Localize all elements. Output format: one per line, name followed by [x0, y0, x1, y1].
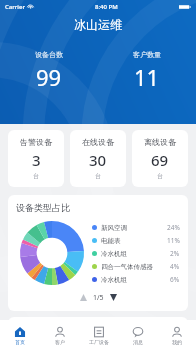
- staticText: 告警设备: [20, 137, 52, 147]
- button[interactable]: 冷水机组: [92, 273, 180, 286]
- staticText: 1/5: [93, 293, 104, 303]
- staticText: 四合一气体传感器: [101, 263, 153, 271]
- staticText: 消息: [133, 339, 143, 345]
- button[interactable]: Next page: [107, 291, 120, 304]
- staticText: 电能表: [101, 237, 121, 245]
- staticText: 新风空调: [101, 224, 127, 232]
- button[interactable]: 新风空调: [92, 221, 180, 234]
- staticText: 4%: [170, 262, 180, 271]
- staticText: 设备类型占比: [16, 202, 70, 213]
- staticText: 离线设备: [144, 137, 176, 147]
- button[interactable]: 首页: [0, 320, 40, 350]
- button[interactable]: 消息: [118, 320, 157, 350]
- staticText: Carrier: [5, 3, 25, 11]
- button[interactable]: 我的: [157, 320, 196, 350]
- button[interactable]: 冷水机组: [92, 247, 180, 260]
- staticText: 冰山运维: [0, 17, 196, 32]
- staticText: 台: [95, 172, 101, 180]
- staticText: 3: [32, 150, 41, 170]
- button[interactable]: 客户: [40, 320, 79, 350]
- button[interactable]: 在线设备: [70, 130, 126, 187]
- staticText: 冷水机组: [101, 250, 127, 258]
- button[interactable]: 四合一气体传感器: [92, 260, 180, 273]
- staticText: 11: [134, 62, 160, 92]
- staticText: 6%: [170, 275, 180, 284]
- button[interactable]: 设备台数: [0, 50, 98, 92]
- button[interactable]: 工厂设备: [79, 320, 118, 350]
- staticText: 在线设备: [82, 137, 114, 147]
- staticText: 首页: [15, 339, 25, 345]
- staticText: 设备台数: [35, 50, 63, 59]
- button[interactable]: 告警设备: [8, 130, 64, 187]
- staticText: 11%: [167, 236, 180, 245]
- staticText: 8:40 PM: [95, 3, 118, 11]
- staticText: 99: [36, 62, 62, 92]
- staticText: 台: [33, 172, 39, 180]
- staticText: 工厂设备: [89, 339, 109, 345]
- staticText: 客户数量: [133, 50, 161, 59]
- staticText: 我的: [172, 339, 182, 345]
- staticText: 冷水机组: [101, 276, 127, 284]
- button[interactable]: 离线设备: [132, 130, 188, 187]
- staticText: 69: [151, 150, 169, 170]
- staticText: 2%: [170, 249, 180, 258]
- button[interactable]: 电能表: [92, 234, 180, 247]
- button[interactable]: Previous page: [77, 291, 90, 304]
- button[interactable]: 客户数量: [98, 50, 196, 92]
- staticText: 台: [157, 172, 163, 180]
- staticText: 30: [89, 150, 107, 170]
- staticText: 客户: [55, 339, 65, 345]
- staticText: 24%: [167, 223, 180, 232]
